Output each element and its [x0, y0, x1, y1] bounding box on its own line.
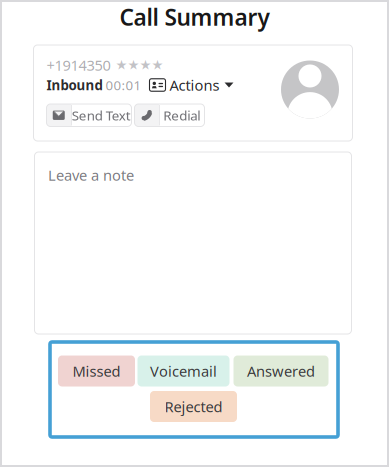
staticText: Send Text: [72, 106, 131, 124]
staticText: Voicemail: [150, 361, 217, 381]
staticText: Actions: [169, 75, 219, 95]
staticText: Rejected: [164, 397, 222, 416]
button[interactable]: Redial: [134, 104, 204, 126]
staticText: Leave a note: [48, 165, 134, 185]
button[interactable]: Voicemail: [137, 355, 229, 386]
staticText: Redial: [163, 106, 200, 124]
staticText: 00:01: [105, 76, 141, 94]
staticText: Inbound: [46, 76, 102, 94]
button[interactable]: Rejected: [150, 391, 237, 422]
staticText: Missed: [72, 361, 120, 381]
staticText: Answered: [247, 361, 315, 381]
staticText: ★★★★: [115, 57, 163, 72]
button[interactable]: Send Text: [46, 104, 131, 126]
button[interactable]: Missed: [58, 355, 135, 386]
button[interactable]: Answered: [233, 355, 328, 386]
staticText: +1914350: [46, 55, 110, 75]
staticText: Call Summary: [119, 2, 269, 32]
